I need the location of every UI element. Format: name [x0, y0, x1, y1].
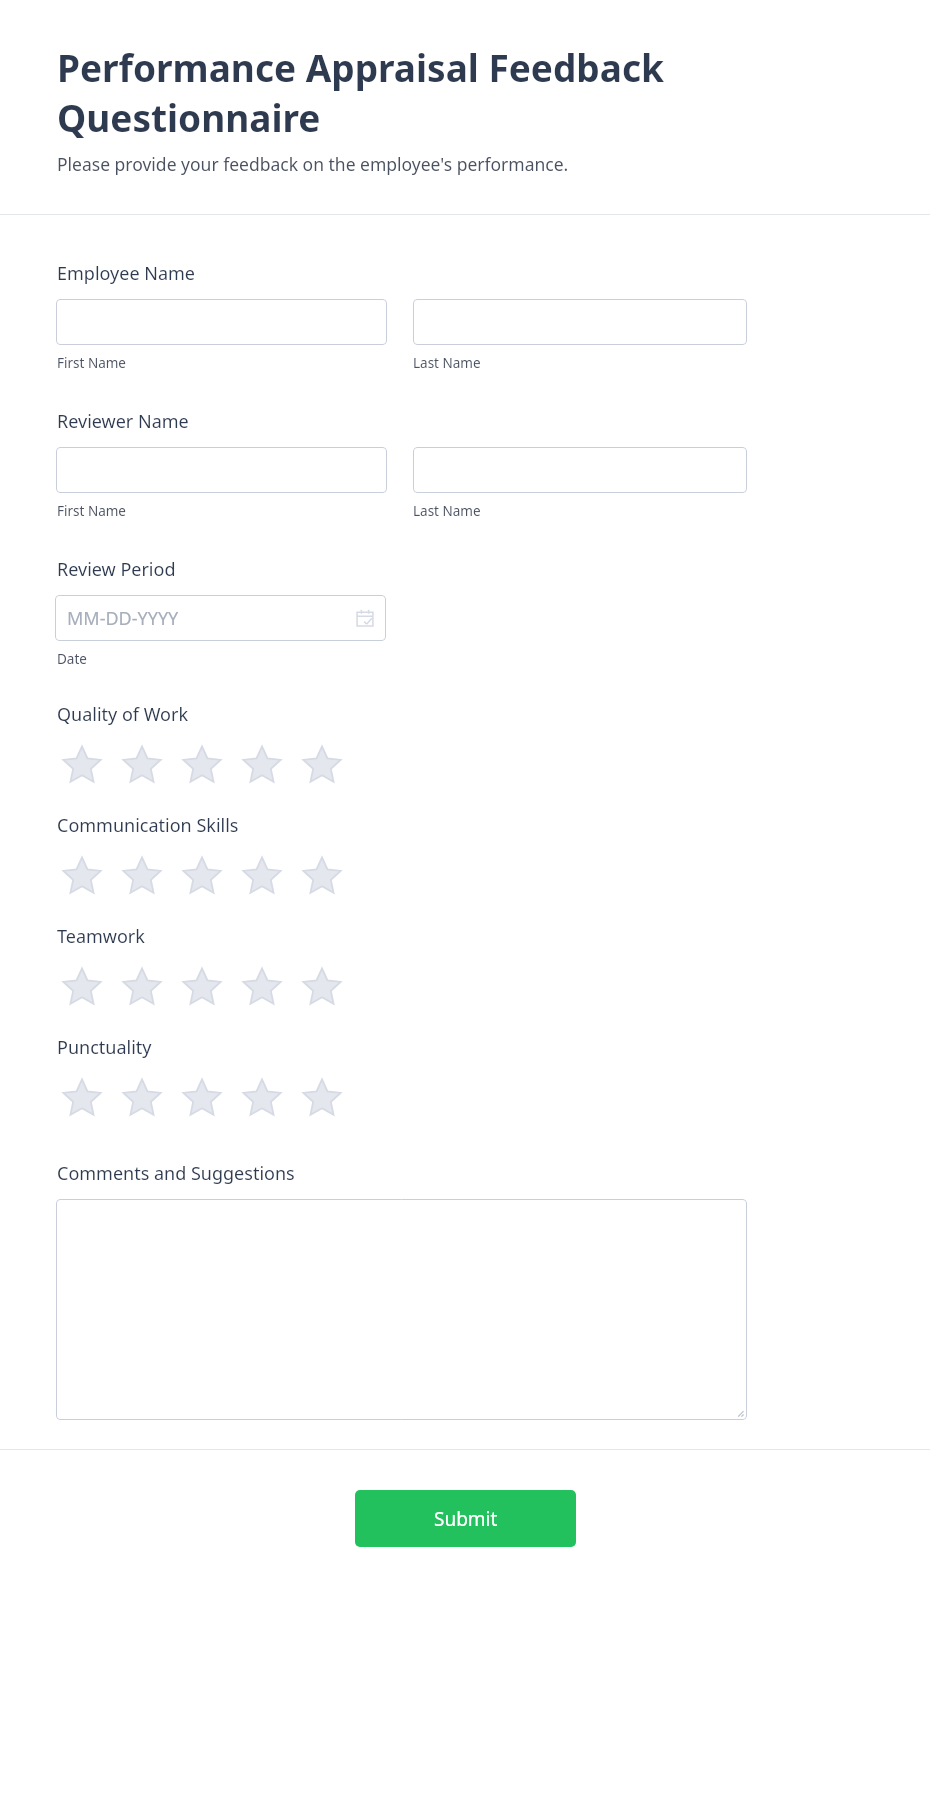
- button[interactable]: Teamwork rating 1 of 5: [52, 965, 112, 1009]
- button[interactable]: Punctuality rating 3 of 5: [172, 1076, 232, 1120]
- button[interactable]: [413, 447, 747, 493]
- button[interactable]: MM-DD-YYYY: [55, 595, 386, 641]
- staticText: Performance Appraisal Feedback: [57, 42, 664, 92]
- button[interactable]: Communication Skills rating 4 of 5: [232, 854, 292, 898]
- button[interactable]: [413, 299, 747, 345]
- button[interactable]: Submit: [355, 1490, 576, 1547]
- button[interactable]: Communication Skills rating 5 of 5: [292, 854, 352, 898]
- button[interactable]: Communication Skills rating 2 of 5: [112, 854, 172, 898]
- button[interactable]: [56, 447, 387, 493]
- button[interactable]: Teamwork rating 5 of 5: [292, 965, 352, 1009]
- button[interactable]: Punctuality rating 1 of 5: [52, 1076, 112, 1120]
- staticText: Punctuality: [57, 1035, 152, 1060]
- button[interactable]: Quality of Work rating 4 of 5: [232, 743, 292, 787]
- staticText: Employee Name: [57, 261, 196, 286]
- button[interactable]: Punctuality rating 4 of 5: [232, 1076, 292, 1120]
- staticText: Date: [57, 650, 87, 668]
- staticText: Quality of Work: [57, 702, 189, 727]
- staticText: MM-DD-YYYY: [67, 606, 179, 631]
- staticText: Last Name: [413, 502, 481, 520]
- staticText: First Name: [57, 502, 126, 520]
- staticText: Teamwork: [57, 924, 145, 949]
- button[interactable]: Teamwork rating 3 of 5: [172, 965, 232, 1009]
- other: Pick date: [356, 609, 374, 627]
- staticText: Please provide your feedback on the empl…: [57, 152, 569, 176]
- staticText: Comments and Suggestions: [57, 1161, 295, 1186]
- button[interactable]: Quality of Work rating 2 of 5: [112, 743, 172, 787]
- staticText: First Name: [57, 354, 126, 372]
- button[interactable]: Teamwork rating 2 of 5: [112, 965, 172, 1009]
- staticText: Last Name: [413, 354, 481, 372]
- button[interactable]: Punctuality rating 5 of 5: [292, 1076, 352, 1120]
- button[interactable]: Communication Skills rating 3 of 5: [172, 854, 232, 898]
- button[interactable]: Quality of Work rating 1 of 5: [52, 743, 112, 787]
- button[interactable]: Communication Skills rating 1 of 5: [52, 854, 112, 898]
- button[interactable]: Punctuality rating 2 of 5: [112, 1076, 172, 1120]
- staticText: Submit: [434, 1506, 498, 1532]
- staticText: Questionnaire: [57, 92, 321, 142]
- staticText: Reviewer Name: [57, 409, 189, 434]
- button[interactable]: [56, 299, 387, 345]
- staticText: Review Period: [57, 557, 176, 582]
- button[interactable]: Quality of Work rating 5 of 5: [292, 743, 352, 787]
- button[interactable]: Quality of Work rating 3 of 5: [172, 743, 232, 787]
- button[interactable]: Teamwork rating 4 of 5: [232, 965, 292, 1009]
- button[interactable]: [56, 1199, 747, 1420]
- staticText: Communication Skills: [57, 813, 239, 838]
